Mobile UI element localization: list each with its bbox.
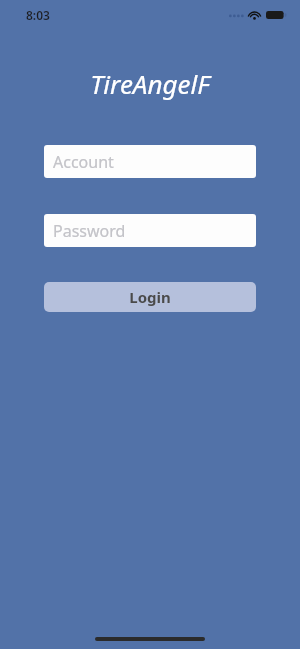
staticText: Account [53, 151, 114, 173]
staticText: TireAngelF [90, 66, 210, 101]
staticText: 8:03 [26, 7, 50, 23]
staticText: Password [53, 220, 126, 242]
button[interactable]: Account input field [44, 145, 256, 178]
button[interactable]: Login [44, 282, 256, 312]
button[interactable]: Password input field [44, 214, 256, 247]
staticText: Login [129, 287, 171, 307]
